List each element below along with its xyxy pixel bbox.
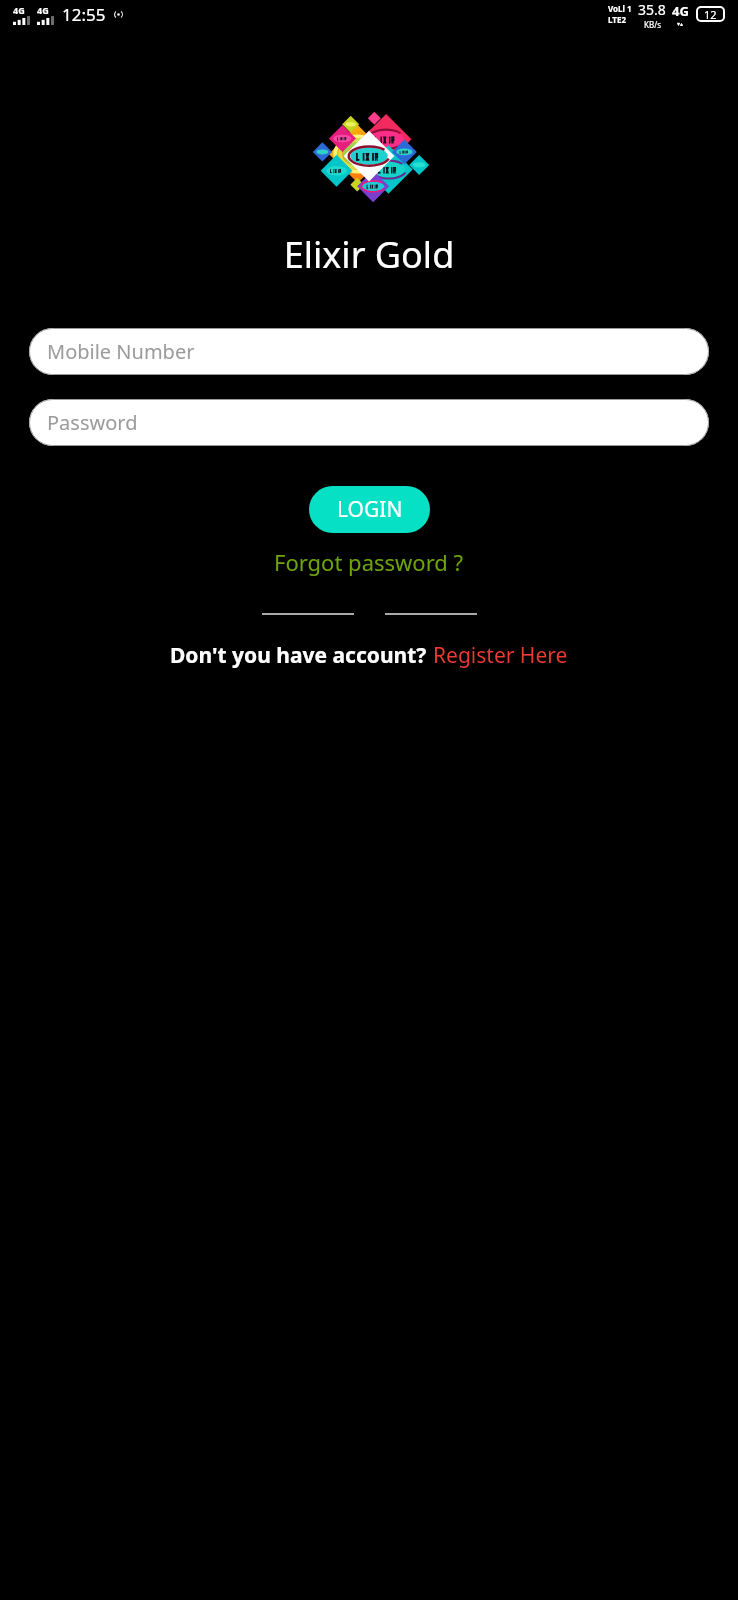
- staticText: 4G: [37, 4, 49, 16]
- staticText: Mobile Number: [47, 338, 195, 365]
- button[interactable]: Forgot password ?: [266, 544, 472, 580]
- button[interactable]: Password: [29, 399, 709, 446]
- staticText: VoLl 1: [608, 3, 632, 14]
- staticText: 12:55: [62, 3, 106, 26]
- staticText: Don't you have account?: [170, 641, 427, 670]
- button[interactable]: Register Here: [433, 641, 568, 670]
- staticText: LOGIN: [337, 495, 403, 524]
- staticText: 4G: [672, 2, 689, 20]
- staticText: Password: [47, 409, 138, 436]
- staticText: ▾▴: [677, 20, 684, 27]
- staticText: 35.8: [638, 0, 666, 19]
- staticText: 4G: [13, 4, 25, 16]
- button[interactable]: Mobile Number: [29, 328, 709, 375]
- staticText: Elixir Gold: [0, 230, 738, 279]
- staticText: Register Here: [433, 641, 568, 670]
- button[interactable]: LOGIN: [309, 486, 430, 533]
- staticText: LTE2: [608, 14, 626, 25]
- other: Elixir Gold logo: [310, 112, 428, 196]
- staticText: Forgot password ?: [274, 547, 464, 577]
- staticText: KB/s: [644, 19, 661, 28]
- staticText: 12: [704, 7, 717, 22]
